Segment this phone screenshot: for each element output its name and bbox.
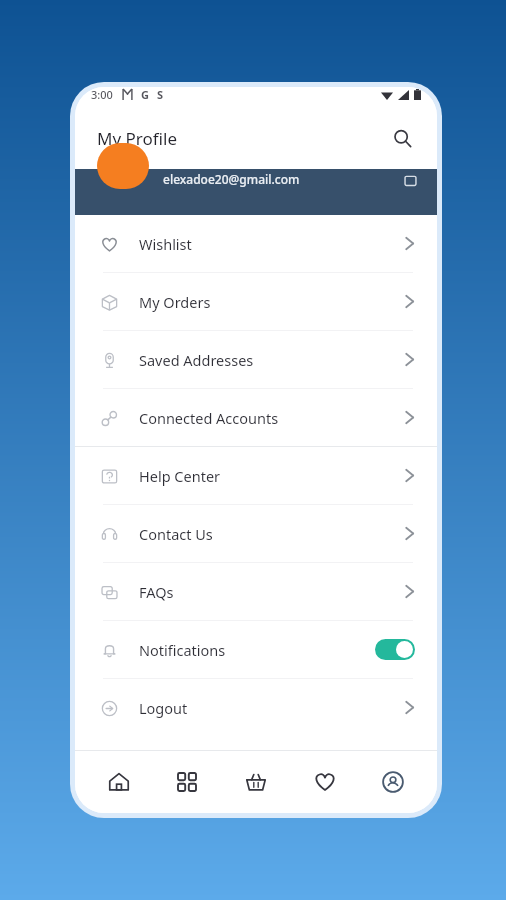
button[interactable]: Notifications [75, 621, 437, 678]
staticText: Logout [139, 698, 188, 718]
button[interactable]: Connected Accounts [75, 389, 437, 446]
button[interactable]: Search [385, 121, 419, 155]
button[interactable]: FAQs [75, 563, 437, 620]
staticText: S [157, 87, 164, 102]
button[interactable]: Wishlist [75, 215, 437, 272]
button[interactable]: Logout [75, 679, 437, 736]
button[interactable]: Cart [225, 755, 287, 809]
staticText: Contact Us [139, 524, 213, 544]
staticText: FAQs [139, 582, 174, 602]
button[interactable]: Home [88, 755, 150, 809]
staticText: G [141, 87, 149, 102]
staticText: elexadoe20@gmail.com [163, 171, 300, 187]
staticText: 3:00 [91, 87, 113, 102]
button[interactable]: Contact Us [75, 505, 437, 562]
button[interactable]: Saved Addresses [75, 331, 437, 388]
button[interactable]: Notifications toggle [375, 639, 415, 660]
staticText: Notifications [139, 640, 226, 660]
button[interactable]: Wishlist [294, 755, 356, 809]
staticText: Help Center [139, 466, 221, 486]
staticText: Wishlist [139, 234, 192, 254]
staticText: Saved Addresses [139, 350, 254, 370]
staticText: My Profile [97, 127, 177, 150]
button[interactable]: Profile [362, 755, 424, 809]
button[interactable]: Categories [156, 755, 218, 809]
button[interactable]: elexadoe20@gmail.com [75, 169, 437, 215]
staticText: My Orders [139, 292, 211, 312]
button[interactable]: Help Center [75, 447, 437, 504]
button[interactable]: Edit profile [399, 169, 421, 191]
button[interactable]: My Orders [75, 273, 437, 330]
staticText: Connected Accounts [139, 408, 279, 428]
